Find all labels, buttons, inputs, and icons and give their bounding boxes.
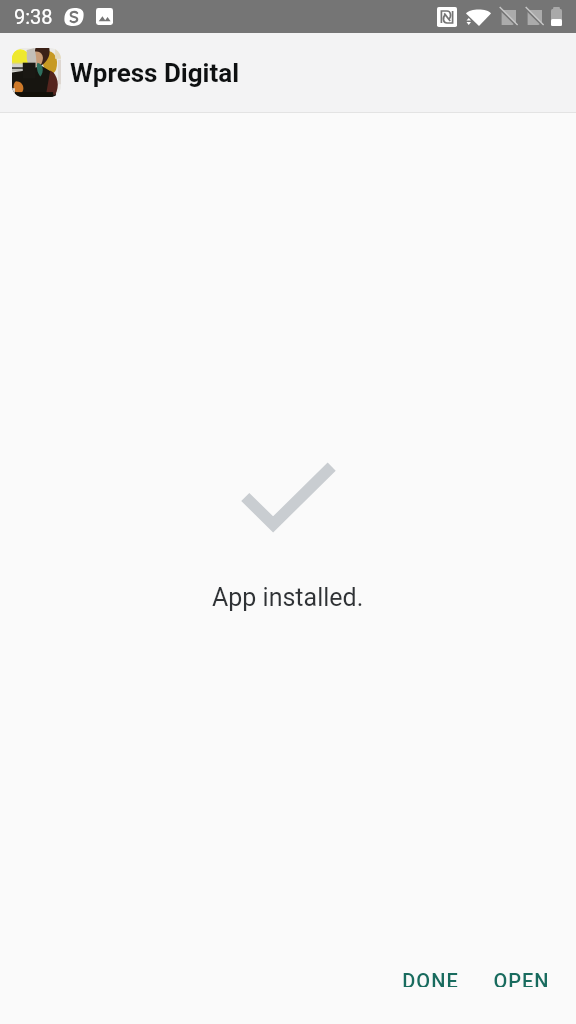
staticText: DONE [402,969,459,987]
staticText: Wpress Digital [70,58,240,88]
button[interactable]: DONE [395,950,466,1006]
staticText: App installed. [212,583,364,612]
staticText: OPEN [493,969,550,987]
other: Wpress Digital app icon [12,48,61,97]
staticText: 9:38 [14,5,53,28]
button[interactable]: OPEN [486,950,557,1006]
